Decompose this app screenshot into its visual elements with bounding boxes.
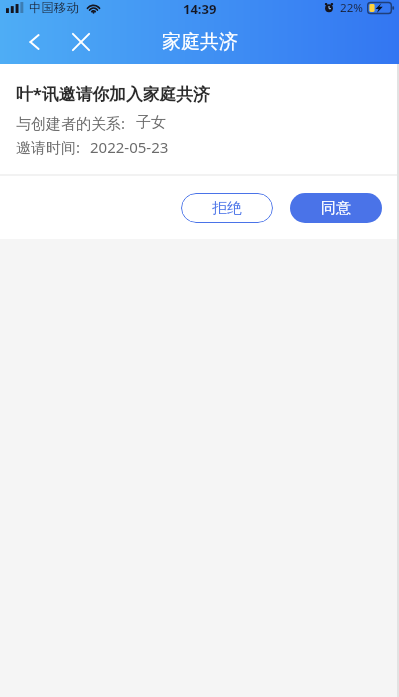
staticText: 同意 (321, 199, 351, 218)
staticText: 与创建者的关系: (16, 113, 126, 133)
button[interactable]: 返回 (12, 20, 56, 64)
staticText: 家庭共济 (162, 30, 238, 54)
staticText: 14:39 (183, 0, 217, 15)
staticText: 2022-05-23 (90, 137, 169, 157)
button[interactable]: 关闭 (63, 20, 99, 64)
staticText: 中国移动 (29, 0, 79, 15)
staticText: 拒绝 (212, 199, 242, 218)
staticText: 邀请时间: (16, 137, 81, 157)
button[interactable]: 拒绝 (181, 193, 273, 223)
button[interactable]: 同意 (290, 193, 382, 223)
staticText: 叶*讯邀请你加入家庭共济 (16, 82, 210, 105)
staticText: 22% (340, 0, 363, 15)
staticText: 子女 (136, 113, 166, 132)
